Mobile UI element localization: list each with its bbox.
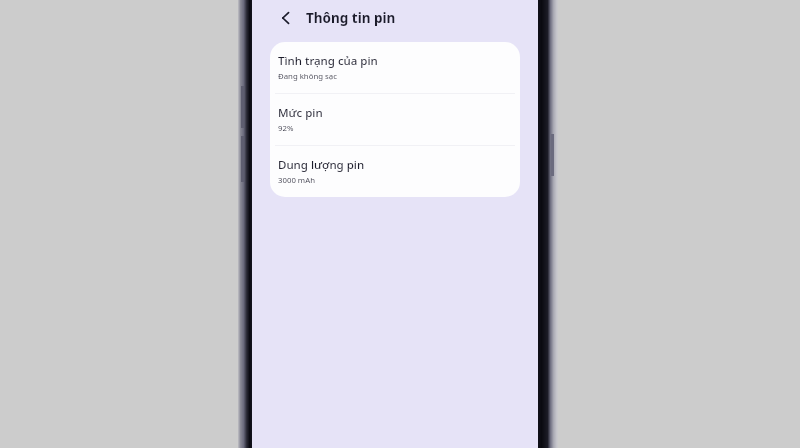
button[interactable]: Mức pin [270, 94, 520, 145]
staticText: 92% [278, 123, 294, 134]
staticText: Tình trạng của pin [278, 53, 378, 69]
staticText: 3000 mAh [278, 175, 315, 186]
staticText: Dung lượng pin [278, 157, 365, 173]
button[interactable]: Tình trạng của pin [270, 42, 520, 93]
staticText: Đang không sạc [278, 71, 337, 82]
staticText: Thông tin pin [306, 9, 396, 27]
button[interactable]: Back [274, 6, 298, 30]
button[interactable]: Dung lượng pin [270, 146, 520, 197]
staticText: Mức pin [278, 105, 323, 121]
